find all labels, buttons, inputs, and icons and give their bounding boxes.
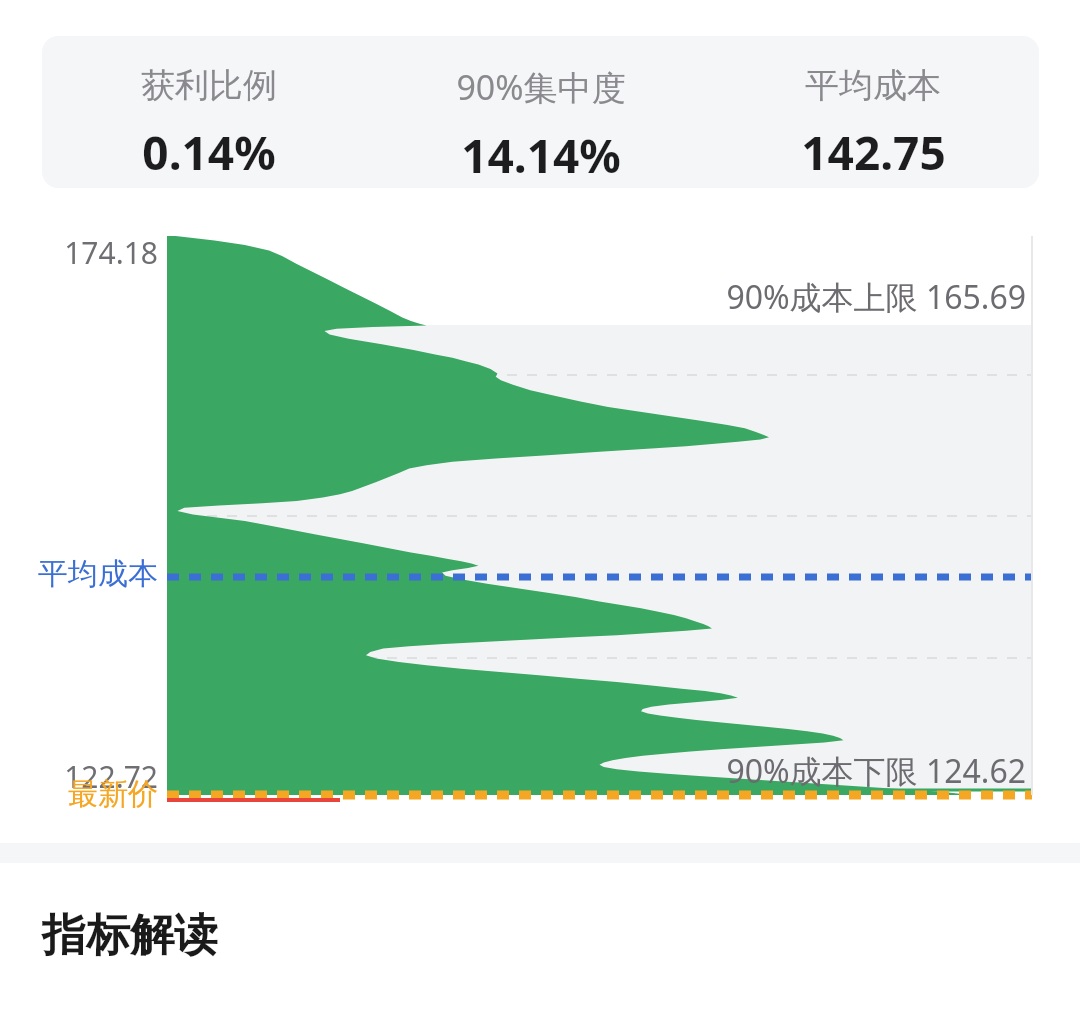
button[interactable]: 90%集中度: [375, 36, 707, 188]
staticText: 0.14%: [142, 121, 276, 184]
staticText: 平均成本: [36, 555, 158, 593]
button[interactable]: 获利比例: [42, 36, 375, 188]
staticText: 90%成本下限 124.62: [726, 749, 1026, 793]
staticText: 122.72: [64, 756, 158, 797]
staticText: 指标解读: [42, 908, 218, 963]
staticText: 142.75: [801, 121, 946, 184]
staticText: 90%成本上限 165.69: [726, 275, 1026, 319]
staticText: 90%集中度: [456, 64, 626, 110]
button[interactable]: [0, 200, 1080, 840]
staticText: 14.14%: [461, 124, 621, 187]
staticText: 最新价: [66, 775, 158, 813]
staticText: 174.18: [64, 232, 158, 273]
button[interactable]: 平均成本: [707, 36, 1039, 188]
staticText: 获利比例: [141, 64, 277, 107]
staticText: 平均成本: [805, 64, 941, 107]
button[interactable]: 获利比例: [42, 36, 1039, 188]
